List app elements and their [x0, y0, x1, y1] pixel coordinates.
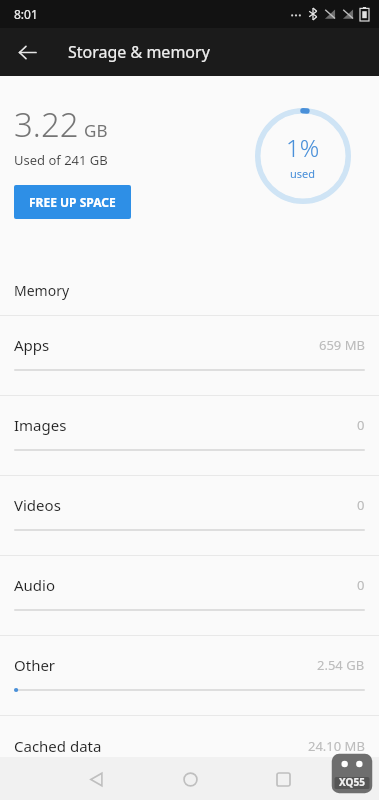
button[interactable]: Videos — [0, 476, 379, 556]
button[interactable]: Audio — [0, 556, 379, 636]
staticText: FREE UP SPACE — [29, 194, 116, 210]
staticText: 0 — [357, 416, 365, 434]
button[interactable]: Images — [0, 396, 379, 476]
button[interactable]: Other — [0, 636, 379, 716]
button[interactable]: Apps — [0, 316, 379, 396]
staticText: Other — [14, 655, 56, 675]
staticText: Used of 241 GB — [14, 151, 108, 169]
button[interactable]: Recents — [263, 759, 303, 799]
staticText: Cached data — [14, 736, 102, 756]
staticText: Memory — [14, 281, 70, 300]
staticText: Images — [14, 415, 67, 435]
staticText: Audio — [14, 575, 56, 595]
staticText: 2.54 GB — [317, 656, 365, 674]
staticText: XQ55 — [339, 775, 365, 789]
staticText: 8:01 — [14, 6, 38, 22]
staticText: 0 — [357, 576, 365, 594]
staticText: used — [290, 166, 316, 181]
staticText: GB — [84, 119, 108, 142]
staticText: Storage & memory — [68, 41, 210, 63]
button[interactable]: Cached data — [0, 716, 379, 757]
staticText: 1% — [286, 131, 320, 164]
button[interactable]: Back — [76, 759, 116, 799]
staticText: 659 MB — [319, 336, 365, 354]
staticText: Videos — [14, 495, 61, 515]
staticText: 24.10 MB — [308, 737, 365, 755]
button[interactable]: Back — [8, 33, 46, 71]
staticText: 3.22 — [14, 102, 79, 147]
button[interactable]: FREE UP SPACE — [14, 185, 131, 219]
staticText: 0 — [357, 496, 365, 514]
staticText: Apps — [14, 335, 50, 355]
button[interactable]: Home — [170, 759, 210, 799]
